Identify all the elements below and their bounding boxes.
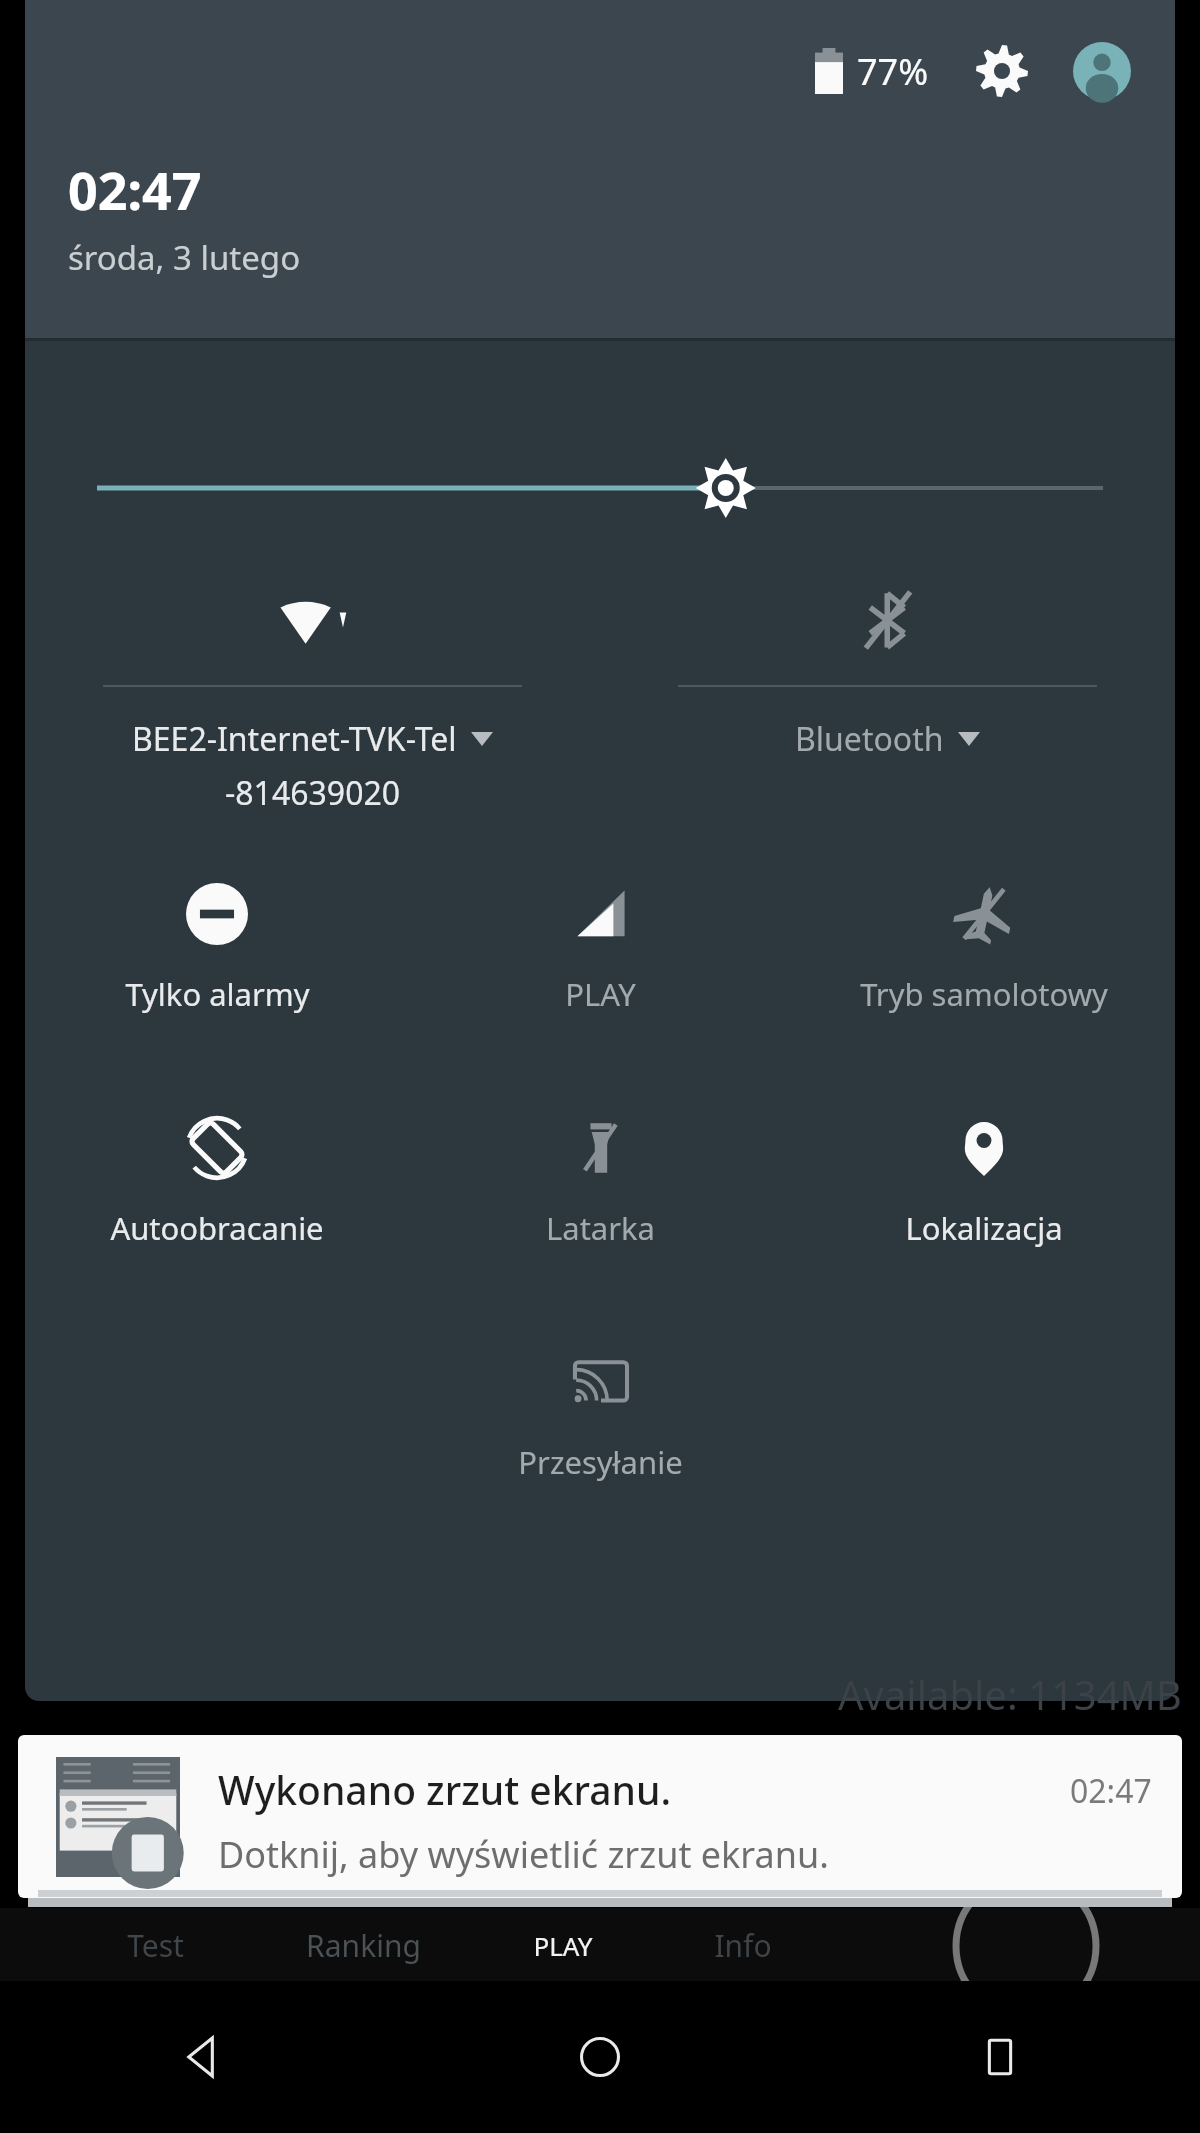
button[interactable]: Autoobracanie — [25, 1099, 409, 1281]
staticText: środa, 3 lutego — [68, 235, 301, 280]
staticText: 02:47 — [1070, 1769, 1152, 1813]
button[interactable]: PLAY — [477, 1908, 648, 1982]
button[interactable]: Latarka — [409, 1099, 792, 1281]
button[interactable]: Test — [60, 1908, 250, 1982]
button[interactable]: Przesyłanie — [409, 1333, 792, 1515]
staticText: Tryb samolotowy — [860, 973, 1108, 1015]
button[interactable]: Recents — [800, 1981, 1200, 2133]
staticText: Przesyłanie — [518, 1441, 683, 1483]
staticText: 77% — [857, 47, 929, 96]
staticText: Test — [127, 1925, 184, 1966]
staticText: BEE2-Internet-TVK-Tel — [132, 717, 457, 761]
staticText: PLAY — [565, 973, 636, 1015]
button[interactable]: Ranking — [250, 1908, 477, 1982]
button[interactable]: Settings — [971, 40, 1033, 102]
staticText: Ranking — [306, 1925, 421, 1966]
staticText: Wykonano zrzut ekranu. — [218, 1763, 672, 1816]
staticText: Dotknij, aby wyświetlić zrzut ekranu. — [218, 1830, 829, 1879]
staticText: Tylko alarmy — [125, 973, 310, 1015]
button[interactable]: Lokalizacja — [792, 1099, 1175, 1281]
button[interactable]: Tryb samolotowy — [792, 865, 1175, 1047]
staticText: Bluetooth — [795, 717, 944, 761]
staticText: Autoobracanie — [110, 1207, 324, 1249]
staticText: Lokalizacja — [905, 1207, 1063, 1249]
staticText: PLAY — [533, 1928, 593, 1963]
staticText: Available: 1134MB — [838, 1667, 1182, 1721]
button[interactable]: Home — [400, 1981, 800, 2133]
staticText: Latarka — [546, 1207, 655, 1249]
button[interactable]: BEE2-Internet-TVK-Tel — [25, 583, 600, 815]
button[interactable]: User profile — [1071, 40, 1133, 102]
button[interactable]: Info — [648, 1908, 837, 1982]
staticText: -814639020 — [225, 771, 401, 815]
button[interactable]: Wykonano zrzut ekranu. — [18, 1735, 1182, 1898]
button[interactable]: Brightness — [25, 453, 1175, 523]
button[interactable]: Bluetooth — [600, 583, 1175, 761]
button[interactable]: PLAY — [409, 865, 792, 1047]
staticText: 02:47 — [68, 154, 202, 225]
button[interactable]: Back — [0, 1981, 400, 2133]
staticText: Info — [714, 1925, 772, 1966]
button[interactable]: Tylko alarmy — [25, 865, 409, 1047]
